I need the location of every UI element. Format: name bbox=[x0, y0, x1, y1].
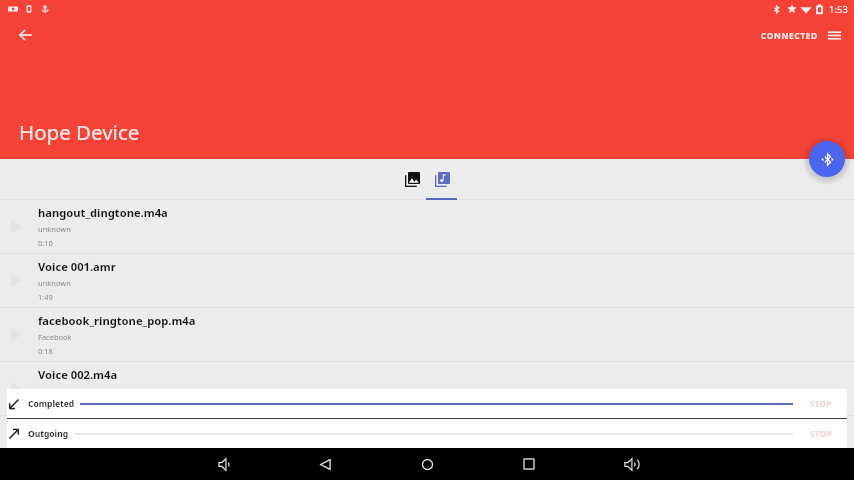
staticText: CONNECTED bbox=[761, 30, 818, 41]
staticText: Hope Device bbox=[19, 118, 140, 146]
staticText: facebook_ringtone_pop.m4a bbox=[38, 313, 196, 328]
button[interactable]: STOP bbox=[794, 389, 847, 418]
button[interactable]: Photos bbox=[397, 159, 427, 200]
staticText: unknown bbox=[38, 278, 71, 288]
staticText: 0:10 bbox=[38, 238, 53, 248]
staticText: 1:53 bbox=[829, 3, 848, 16]
button[interactable]: STOP bbox=[794, 419, 847, 448]
staticText: hangout_dingtone.m4a bbox=[38, 205, 168, 220]
button[interactable]: hangout_dingtone.m4a bbox=[0, 200, 854, 254]
button[interactable]: Outgoing bbox=[7, 419, 847, 448]
staticText: unknown bbox=[38, 224, 71, 234]
button[interactable]: Completed bbox=[7, 389, 847, 418]
staticText: Voice 001.amr bbox=[38, 259, 116, 274]
button[interactable]: Home bbox=[405, 448, 449, 480]
button[interactable]: Bluetooth bbox=[809, 141, 845, 177]
button[interactable]: Back bbox=[7, 18, 43, 52]
staticText: 0:20 bbox=[38, 400, 53, 410]
button[interactable]: CONNECTED bbox=[755, 23, 820, 48]
staticText: Outgoing bbox=[28, 428, 69, 440]
staticText: Facebook bbox=[38, 332, 72, 342]
staticText: Completed bbox=[28, 398, 75, 410]
button[interactable]: Back bbox=[303, 448, 347, 480]
staticText: 1:49 bbox=[38, 292, 53, 302]
button[interactable]: Audio bbox=[427, 159, 457, 200]
button[interactable]: Menu bbox=[820, 21, 848, 49]
button[interactable]: Recents bbox=[507, 448, 551, 480]
staticText: 0:18 bbox=[38, 346, 53, 356]
staticText: STOP bbox=[810, 398, 832, 410]
button[interactable]: Voice 001.amr bbox=[0, 254, 854, 308]
staticText: Voice 002.m4a bbox=[38, 367, 118, 382]
staticText: STOP bbox=[810, 428, 832, 440]
staticText: unknown bbox=[38, 386, 71, 396]
button[interactable]: facebook_ringtone_pop.m4a bbox=[0, 308, 854, 362]
button[interactable]: Volume up bbox=[609, 448, 653, 480]
button[interactable]: Volume down bbox=[201, 448, 245, 480]
button[interactable]: Voice 002.m4a bbox=[0, 362, 854, 416]
